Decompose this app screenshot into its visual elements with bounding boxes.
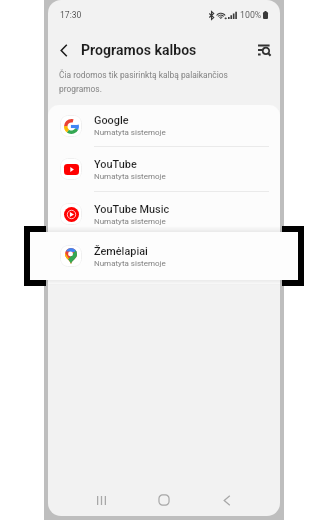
staticText: YouTube Music bbox=[94, 203, 170, 216]
button[interactable]: Back bbox=[212, 485, 242, 515]
staticText: Numatyta sistemoje bbox=[94, 217, 166, 226]
staticText: 100% bbox=[240, 10, 262, 20]
button[interactable]: YouTube Music bbox=[48, 192, 280, 237]
button[interactable]: Žemėlapiai bbox=[48, 237, 280, 284]
staticText: 17:30 bbox=[60, 10, 82, 20]
staticText: Numatyta sistemoje bbox=[94, 172, 166, 181]
button[interactable]: Search bbox=[252, 38, 276, 62]
staticText: Numatyta sistemoje bbox=[94, 128, 166, 137]
button[interactable]: Home bbox=[149, 485, 179, 515]
staticText: Programos kalbos bbox=[81, 42, 197, 59]
staticText: Numatyta sistemoje bbox=[94, 259, 166, 268]
button[interactable]: Žemėlapiai bbox=[30, 232, 297, 280]
staticText: Čia rodomos tik pasirinktą kalbą palaika… bbox=[59, 70, 258, 94]
staticText: Žemėlapiai bbox=[94, 245, 148, 258]
staticText: Google bbox=[94, 114, 129, 127]
button[interactable]: YouTube bbox=[48, 147, 280, 192]
button[interactable]: Back bbox=[53, 39, 75, 61]
button[interactable]: Google bbox=[48, 105, 280, 147]
staticText: Numatyta sistemoje bbox=[94, 263, 166, 272]
staticText: Žemėlapiai bbox=[94, 249, 148, 262]
staticText: YouTube bbox=[94, 158, 137, 171]
button[interactable]: Recents bbox=[86, 485, 116, 515]
